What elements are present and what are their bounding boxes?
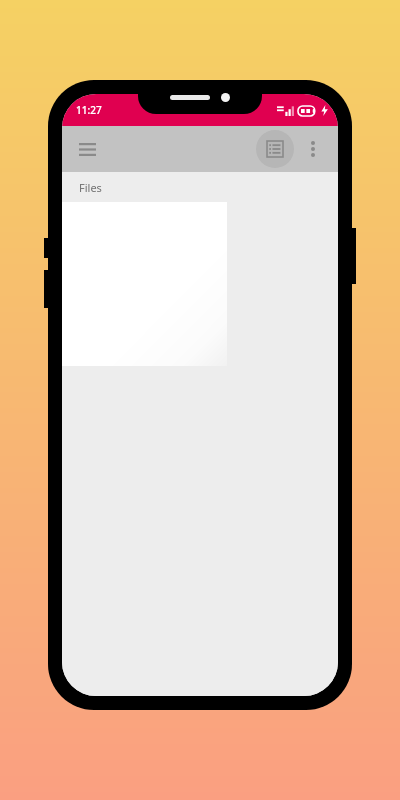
- button[interactable]: Switch view: [256, 130, 294, 168]
- staticText: 11:27: [76, 103, 102, 117]
- button[interactable]: Open navigation drawer: [68, 130, 106, 168]
- button[interactable]: More options: [294, 130, 332, 168]
- staticText: Files: [79, 180, 102, 195]
